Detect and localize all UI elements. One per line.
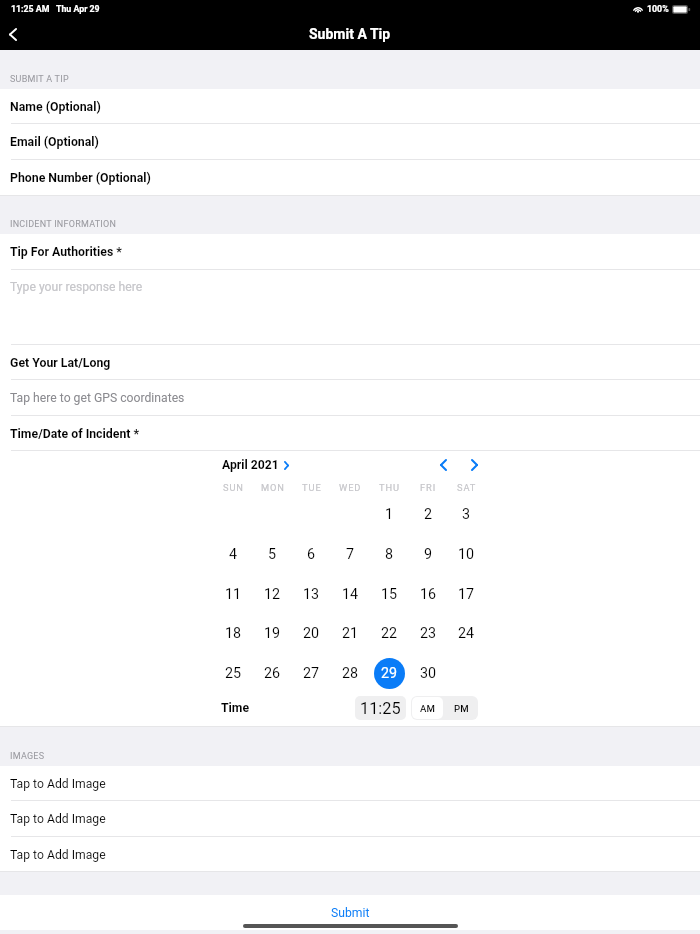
staticText: WED [339, 482, 362, 493]
staticText: 18 [225, 625, 242, 642]
staticText: Submit A Tip [309, 26, 391, 42]
button[interactable]: Back [0, 19, 28, 49]
staticText: SUBMIT A TIP [10, 74, 69, 85]
staticText: 16 [420, 586, 437, 603]
staticText: AM [420, 703, 435, 714]
button[interactable]: 4 [218, 539, 249, 570]
staticText: IMAGES [10, 751, 45, 762]
staticText: Tap to Add Image [10, 848, 106, 862]
button[interactable]: 20 [296, 618, 327, 649]
staticText: Tap here to get GPS coordinates [10, 391, 185, 405]
staticText: MON [261, 482, 285, 493]
button[interactable]: 28 [335, 658, 366, 689]
button[interactable]: 23 [413, 618, 444, 649]
button[interactable]: 16 [413, 579, 444, 610]
button[interactable]: Email (Optional) [0, 124, 700, 160]
staticText: 17 [458, 586, 475, 603]
staticText: 26 [264, 665, 281, 682]
button[interactable]: 5 [257, 539, 288, 570]
staticText: Tap to Add Image [10, 812, 106, 826]
staticText: Email (Optional) [10, 135, 99, 149]
button[interactable]: AM [412, 697, 443, 719]
button[interactable]: Tap to Add Image [0, 766, 700, 801]
button[interactable]: Get Your Lat/Long [0, 345, 700, 380]
button[interactable]: Tip For Authorities * [0, 234, 700, 270]
staticText: THU [379, 482, 400, 493]
button[interactable]: Tap to Add Image [0, 837, 700, 872]
staticText: Get Your Lat/Long [10, 356, 111, 370]
staticText: TUE [302, 482, 322, 493]
staticText: Time [221, 701, 250, 715]
button[interactable]: 29 [374, 658, 405, 689]
staticText: 23 [420, 625, 437, 642]
button[interactable]: 10 [451, 539, 482, 570]
staticText: April 2021 [222, 458, 279, 472]
staticText: Phone Number (Optional) [10, 171, 151, 185]
button[interactable]: 17 [451, 579, 482, 610]
button[interactable]: PM [444, 697, 478, 719]
button[interactable]: April 2021 [222, 455, 289, 475]
staticText: Time/Date of Incident * [10, 427, 140, 441]
staticText: 3 [462, 506, 471, 523]
button[interactable]: 11 [218, 579, 249, 610]
staticText: SAT [457, 482, 477, 493]
button[interactable]: 27 [296, 658, 327, 689]
staticText: Tap to Add Image [10, 777, 106, 791]
button[interactable]: Phone Number (Optional) [0, 160, 700, 196]
staticText: SUN [223, 482, 244, 493]
staticText: 29 [381, 665, 398, 682]
staticText: Name (Optional) [10, 100, 101, 114]
button[interactable]: 11:25 [355, 696, 406, 720]
button[interactable]: 1 [374, 499, 405, 530]
button[interactable]: 14 [335, 579, 366, 610]
button[interactable]: 24 [451, 618, 482, 649]
button[interactable]: 18 [218, 618, 249, 649]
staticText: 11 [225, 586, 242, 603]
staticText: 19 [264, 625, 281, 642]
staticText: 11:25 AM [11, 4, 50, 14]
staticText: Thu Apr 29 [56, 4, 100, 14]
button[interactable]: 7 [335, 539, 366, 570]
button[interactable]: Type your response here [0, 270, 700, 345]
staticText: 4 [229, 546, 238, 563]
button[interactable]: 12 [257, 579, 288, 610]
button[interactable]: Next month [463, 454, 485, 476]
staticText: 2 [424, 506, 433, 523]
staticText: 21 [342, 625, 359, 642]
button[interactable]: 9 [413, 539, 444, 570]
staticText: 27 [303, 665, 320, 682]
staticText: 24 [458, 625, 475, 642]
button[interactable]: 6 [296, 539, 327, 570]
staticText: 9 [424, 546, 433, 563]
staticText: 25 [225, 665, 242, 682]
button[interactable]: 15 [374, 579, 405, 610]
staticText: 20 [303, 625, 320, 642]
staticText: 8 [385, 546, 394, 563]
staticText: INCIDENT INFORMATION [10, 219, 117, 230]
button[interactable]: 8 [374, 539, 405, 570]
staticText: FRI [420, 482, 437, 493]
button[interactable]: 22 [374, 618, 405, 649]
button[interactable]: 2 [413, 499, 444, 530]
button[interactable]: 30 [413, 658, 444, 689]
staticText: 14 [342, 586, 359, 603]
staticText: 22 [381, 625, 398, 642]
button[interactable]: 19 [257, 618, 288, 649]
button[interactable]: 21 [335, 618, 366, 649]
button[interactable]: Tap to Add Image [0, 801, 700, 837]
button[interactable]: Tap here to get GPS coordinates [0, 380, 700, 416]
staticText: 5 [268, 546, 277, 563]
staticText: 30 [420, 665, 437, 682]
button[interactable]: 26 [257, 658, 288, 689]
staticText: 6 [307, 546, 316, 563]
button[interactable]: Time/Date of Incident * [0, 416, 700, 451]
staticText: 13 [303, 586, 320, 603]
button[interactable]: Name (Optional) [0, 89, 700, 124]
button[interactable]: 25 [218, 658, 249, 689]
staticText: Submit [331, 906, 370, 920]
button[interactable]: Previous month [432, 454, 454, 476]
button[interactable]: Submit [0, 895, 700, 930]
button[interactable]: 3 [451, 499, 482, 530]
button[interactable]: 13 [296, 579, 327, 610]
staticText: Tip For Authorities * [10, 245, 122, 259]
